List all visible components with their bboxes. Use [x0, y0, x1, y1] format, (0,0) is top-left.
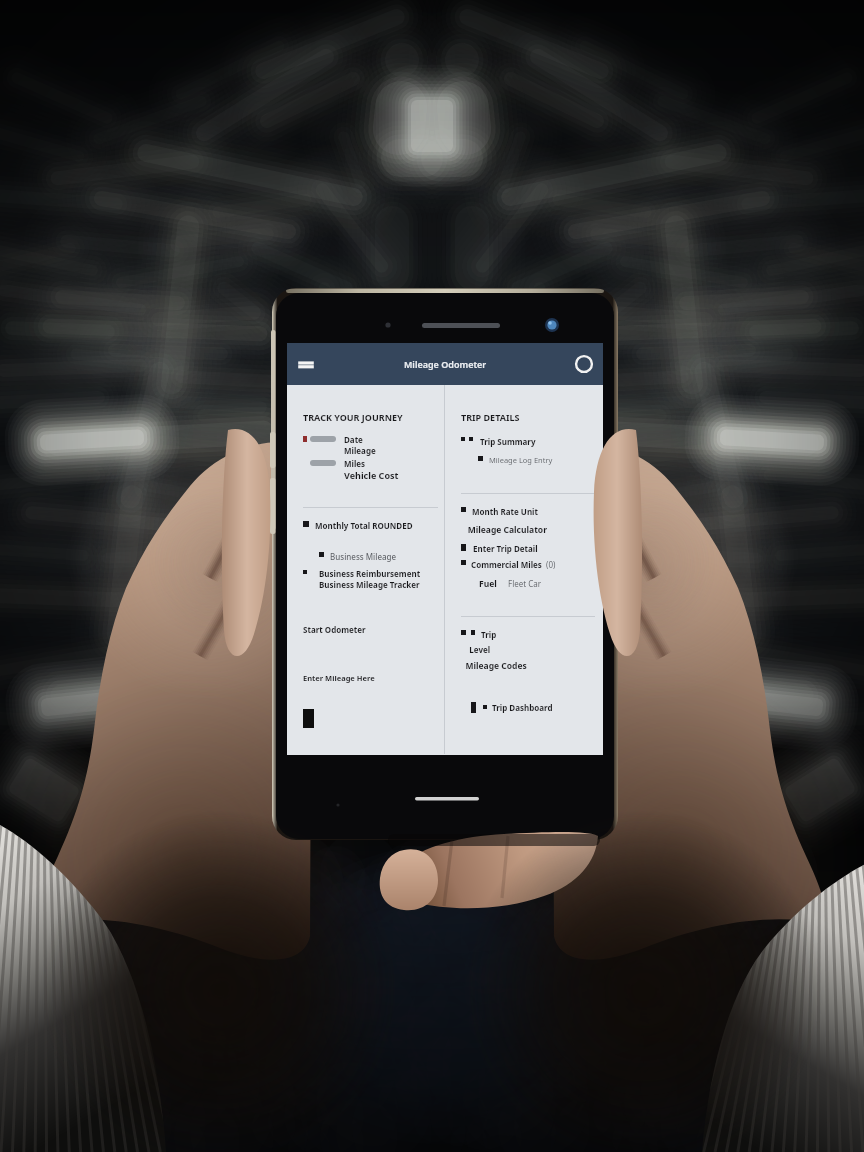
- staticText: Date: [344, 434, 363, 445]
- button[interactable]: Date: [303, 434, 444, 456]
- staticText: Trip Summary: [480, 436, 536, 447]
- staticText: Miles: [344, 458, 366, 469]
- button[interactable]: Business Reimbursement: [303, 568, 444, 590]
- button[interactable]: Business Mileage: [319, 551, 444, 562]
- button[interactable]: Enter Trip Detail: [461, 543, 603, 554]
- staticText: Business Reimbursement: [319, 568, 421, 579]
- staticText: Vehicle Cost: [344, 469, 399, 481]
- staticText: Mileage Calculator: [461, 524, 547, 536]
- staticText: TRACK YOUR JOURNEY: [303, 411, 403, 423]
- button[interactable]: Fuel: [479, 578, 603, 590]
- staticText: Mileage Odometer: [404, 358, 487, 370]
- staticText: Mileage: [344, 445, 376, 456]
- button[interactable]: Open navigation menu: [293, 351, 319, 377]
- button[interactable]: Account: [573, 353, 595, 375]
- staticText: Monthly Total ROUNDED: [315, 520, 413, 531]
- staticText: Trip Dashboard: [492, 702, 553, 713]
- staticText: Enter Trip Detail: [473, 543, 538, 554]
- staticText: Enter Mileage Here: [303, 673, 375, 683]
- button[interactable]: Trip Dashboard: [471, 702, 603, 713]
- button[interactable]: Miles: [303, 458, 444, 481]
- button[interactable]: Commercial Miles: [461, 559, 603, 570]
- button[interactable]: Mileage Log Entry: [478, 455, 603, 465]
- staticText: Fuel: [479, 578, 497, 590]
- button[interactable]: Trip Summary: [461, 436, 603, 447]
- staticText: (0): [546, 559, 556, 570]
- button[interactable]: Trip: [461, 629, 603, 640]
- staticText: Fleet Car: [508, 578, 542, 589]
- staticText: Level: [461, 644, 491, 655]
- staticText: Commercial Miles: [471, 559, 542, 570]
- staticText: Month Rate Unit: [472, 506, 538, 517]
- staticText: Mileage Codes: [461, 660, 527, 672]
- button[interactable]: Monthly Total ROUNDED: [303, 520, 444, 531]
- staticText: Trip: [481, 629, 497, 640]
- staticText: Mileage Log Entry: [489, 455, 553, 465]
- staticText: Business Mileage Tracker: [319, 579, 420, 590]
- button[interactable]: Month Rate Unit: [461, 506, 603, 517]
- staticText: TRIP DETAILS: [461, 411, 520, 423]
- staticText: Business Mileage: [330, 551, 397, 562]
- staticText: Start Odometer: [303, 624, 366, 635]
